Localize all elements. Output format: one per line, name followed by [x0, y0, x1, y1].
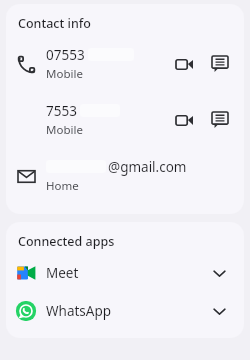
staticText: Contact info	[18, 15, 91, 32]
other: Expand WhatsApp	[202, 294, 236, 328]
button[interactable]: @gmail.com	[6, 148, 244, 204]
staticText: @gmail.com	[108, 158, 187, 176]
button[interactable]: 07553	[6, 36, 244, 92]
staticText: 7553	[46, 102, 77, 120]
staticText: Meet	[46, 264, 202, 282]
staticText: Mobile	[46, 66, 83, 82]
staticText: Home	[46, 178, 79, 194]
button[interactable]: Video call	[166, 46, 202, 82]
staticText: WhatsApp	[46, 302, 202, 320]
button[interactable]: 7553	[6, 92, 244, 148]
button[interactable]: Send message	[202, 102, 238, 138]
button[interactable]: Send message	[202, 46, 238, 82]
staticText: Mobile	[46, 122, 83, 138]
staticText: 07553	[46, 46, 85, 64]
button[interactable]: Video call	[166, 102, 202, 138]
button[interactable]: Meet	[6, 254, 244, 292]
other: Expand Meet	[202, 256, 236, 290]
button[interactable]: WhatsApp	[6, 292, 244, 330]
staticText: Connected apps	[18, 233, 115, 250]
